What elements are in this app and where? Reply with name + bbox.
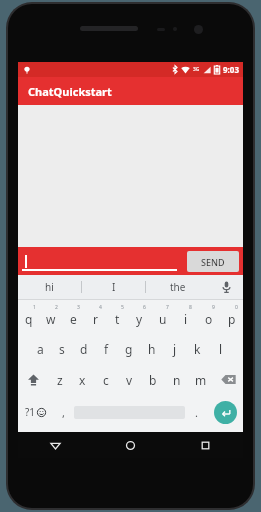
button[interactable]: m (189, 364, 213, 395)
button[interactable]: 7 (151, 300, 174, 333)
button[interactable]: I (82, 275, 145, 299)
staticText: u (159, 311, 167, 327)
staticText: 4 (99, 304, 102, 311)
staticText: q (25, 311, 33, 327)
staticText: 9:03 (223, 64, 239, 75)
staticText: 5 (121, 304, 124, 311)
staticText: y (136, 311, 143, 327)
button[interactable] (22, 251, 183, 271)
staticText: 3G (193, 66, 200, 73)
button[interactable]: x (71, 364, 94, 395)
button[interactable]: 2 (40, 300, 62, 333)
staticText: s (59, 341, 65, 357)
staticText: 2 (55, 304, 58, 311)
staticText: d (80, 341, 88, 357)
button[interactable]: Enter (214, 401, 237, 424)
staticText: 6 (143, 304, 146, 311)
button[interactable]: Shift (18, 364, 48, 395)
button[interactable]: l (209, 333, 232, 364)
button[interactable]: , (52, 395, 74, 429)
button[interactable]: j (163, 333, 186, 364)
staticText: f (104, 341, 109, 357)
button[interactable]: z (48, 364, 71, 395)
staticText: 0 (235, 304, 238, 311)
button[interactable]: b (141, 364, 165, 395)
staticText: v (126, 372, 133, 388)
staticText: n (173, 372, 181, 388)
staticText: , (62, 405, 65, 420)
button[interactable]: g (117, 333, 140, 364)
button[interactable]: s (51, 333, 73, 364)
button[interactable]: Home (93, 432, 168, 458)
button[interactable]: SEND (187, 251, 239, 272)
button[interactable]: h (140, 333, 163, 364)
staticText: t (115, 311, 120, 327)
staticText: r (93, 311, 98, 327)
button[interactable]: d (73, 333, 95, 364)
button[interactable]: Voice input (209, 275, 243, 299)
staticText: w (46, 311, 56, 327)
button[interactable]: 6 (128, 300, 151, 333)
staticText: a (37, 341, 44, 357)
staticText: z (57, 372, 63, 388)
staticText: the (170, 280, 186, 294)
staticText: 8 (189, 304, 192, 311)
staticText: SEND (201, 256, 225, 268)
staticText: b (149, 372, 157, 388)
button[interactable]: hi (18, 275, 81, 299)
button[interactable]: 4 (84, 300, 106, 333)
button[interactable]: k (186, 333, 209, 364)
button[interactable]: a (29, 333, 51, 364)
staticText: p (228, 311, 236, 327)
button[interactable]: 1 (18, 300, 40, 333)
staticText: . (195, 405, 198, 420)
staticText: 9 (212, 304, 215, 311)
staticText: k (194, 341, 201, 357)
button[interactable]: 0 (220, 300, 243, 333)
button[interactable]: 3 (62, 300, 84, 333)
button[interactable]: the (146, 275, 209, 299)
button[interactable]: c (94, 364, 117, 395)
button[interactable]: ?1 (18, 395, 52, 429)
button[interactable]: f (95, 333, 117, 364)
staticText: g (125, 341, 133, 357)
button[interactable]: . (185, 395, 207, 429)
staticText: 1 (33, 304, 36, 311)
staticText: m (195, 372, 207, 388)
staticText: j (173, 341, 177, 357)
staticText: o (205, 311, 213, 327)
staticText: 3 (77, 304, 80, 311)
staticText: c (103, 372, 109, 388)
staticText: l (219, 341, 223, 357)
staticText: h (148, 341, 156, 357)
staticText: ?1 (25, 405, 36, 419)
staticText: ChatQuickstart (28, 84, 112, 99)
button[interactable]: Recents (168, 432, 243, 458)
button[interactable]: v (117, 364, 141, 395)
button[interactable]: n (165, 364, 189, 395)
button[interactable]: ChatQuickstart (18, 77, 243, 105)
button[interactable]: 9 (197, 300, 220, 333)
staticText: I (112, 280, 116, 294)
staticText: x (79, 372, 86, 388)
staticText: 7 (166, 304, 169, 311)
staticText: i (184, 311, 188, 327)
staticText: e (70, 311, 77, 327)
staticText: hi (45, 280, 54, 294)
button[interactable]: 5 (106, 300, 128, 333)
button[interactable]: Back (18, 432, 93, 458)
button[interactable]: 8 (174, 300, 197, 333)
button[interactable]: Delete (213, 364, 243, 395)
